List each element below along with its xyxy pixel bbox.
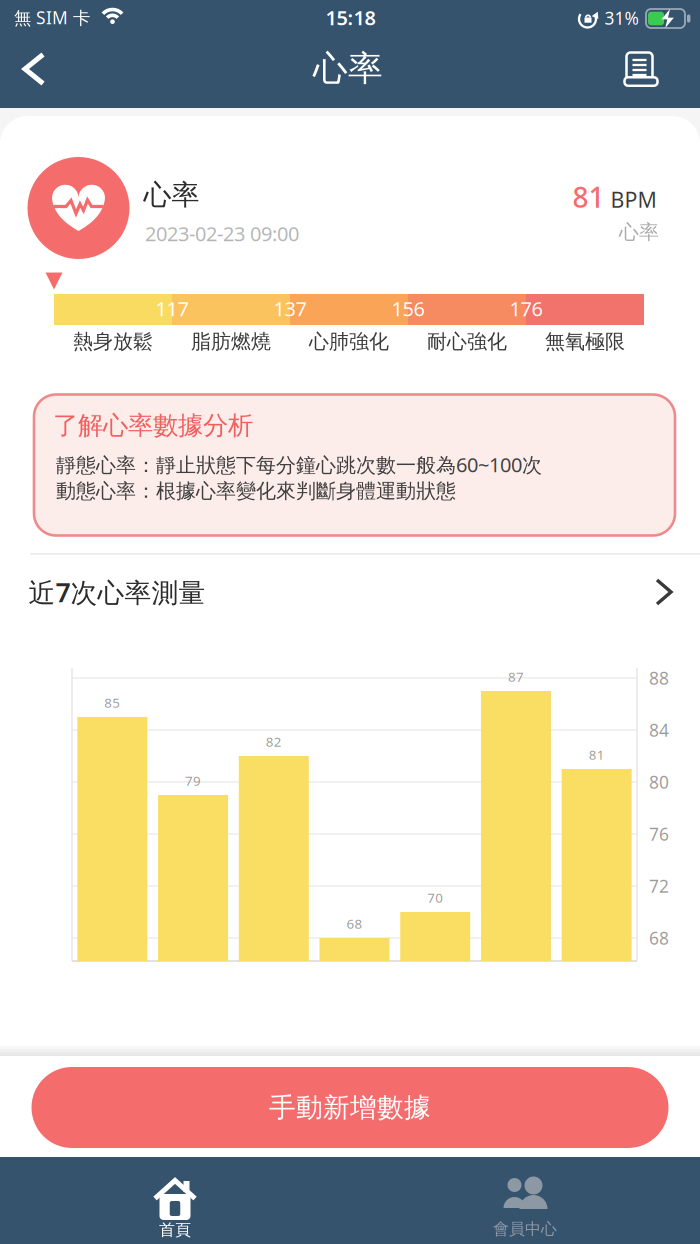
- staticText: 156: [391, 295, 424, 322]
- button[interactable]: 首頁: [5, 1157, 345, 1243]
- staticText: 176: [509, 295, 542, 322]
- staticText: 80: [649, 770, 669, 793]
- button[interactable]: 近7次心率測量: [28, 574, 673, 610]
- staticText: 心率: [619, 220, 659, 244]
- staticText: BPM: [610, 185, 656, 214]
- staticText: 2023-02-23 09:00: [145, 220, 299, 247]
- button[interactable]: 記錄: [616, 45, 666, 95]
- staticText: 脂肪燃燒: [191, 329, 271, 354]
- staticText: 心肺強化: [309, 329, 389, 354]
- staticText: 117: [155, 295, 188, 322]
- staticText: 137: [273, 295, 306, 322]
- staticText: 首頁: [159, 1220, 191, 1240]
- staticText: 68: [649, 926, 669, 949]
- staticText: 心率: [313, 47, 383, 90]
- staticText: 無氧極限: [545, 329, 625, 354]
- staticText: 心率: [143, 178, 199, 212]
- staticText: 88: [649, 666, 669, 689]
- staticText: 70: [427, 889, 443, 906]
- staticText: 31%: [604, 6, 638, 29]
- staticText: 85: [104, 694, 120, 711]
- staticText: 68: [346, 915, 362, 932]
- staticText: 耐心強化: [427, 329, 507, 354]
- staticText: 79: [185, 772, 201, 789]
- staticText: 動態心率：根據心率變化來判斷身體運動狀態: [56, 479, 456, 503]
- staticText: 靜態心率：靜止狀態下每分鐘心跳次數一般為60~100次: [56, 451, 542, 478]
- staticText: 72: [649, 874, 669, 897]
- staticText: 76: [649, 822, 669, 845]
- staticText: 熱身放鬆: [73, 329, 153, 354]
- staticText: 84: [649, 718, 669, 741]
- button[interactable]: 手動新增數據: [31, 1067, 668, 1148]
- staticText: 了解心率數據分析: [53, 410, 253, 441]
- staticText: 會員中心: [493, 1219, 557, 1239]
- staticText: 手動新增數據: [269, 1091, 431, 1124]
- button[interactable]: 返回: [7, 42, 61, 96]
- button[interactable]: 會員中心: [355, 1157, 695, 1243]
- staticText: 81: [572, 178, 604, 216]
- staticText: 15:18: [325, 4, 375, 31]
- staticText: 82: [266, 733, 282, 750]
- staticText: 81: [589, 746, 605, 763]
- staticText: 87: [508, 668, 524, 685]
- staticText: 無 SIM 卡: [14, 6, 90, 29]
- staticText: 近7次心率測量: [28, 574, 205, 610]
